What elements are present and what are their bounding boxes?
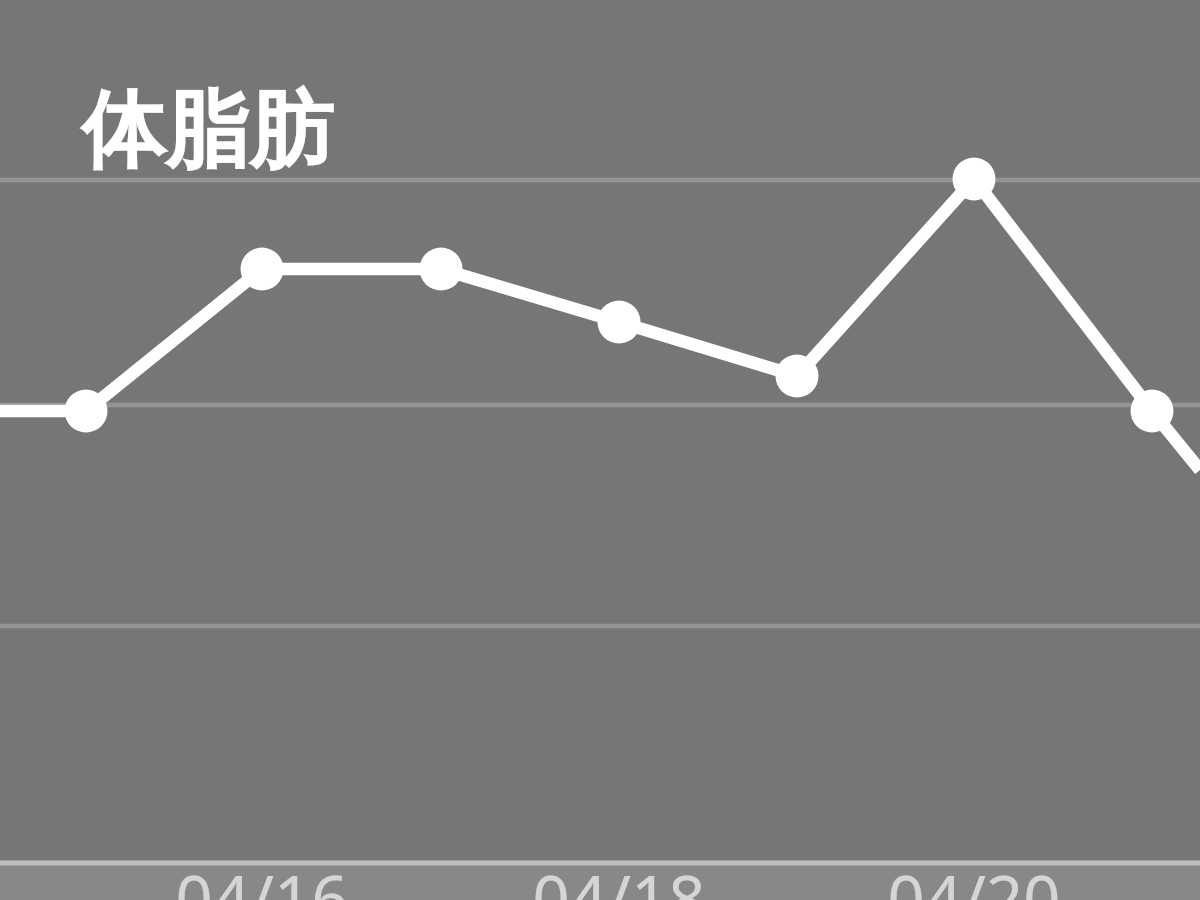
button[interactable]: 体脂肪 body fat trend chart bbox=[0, 0, 1200, 900]
